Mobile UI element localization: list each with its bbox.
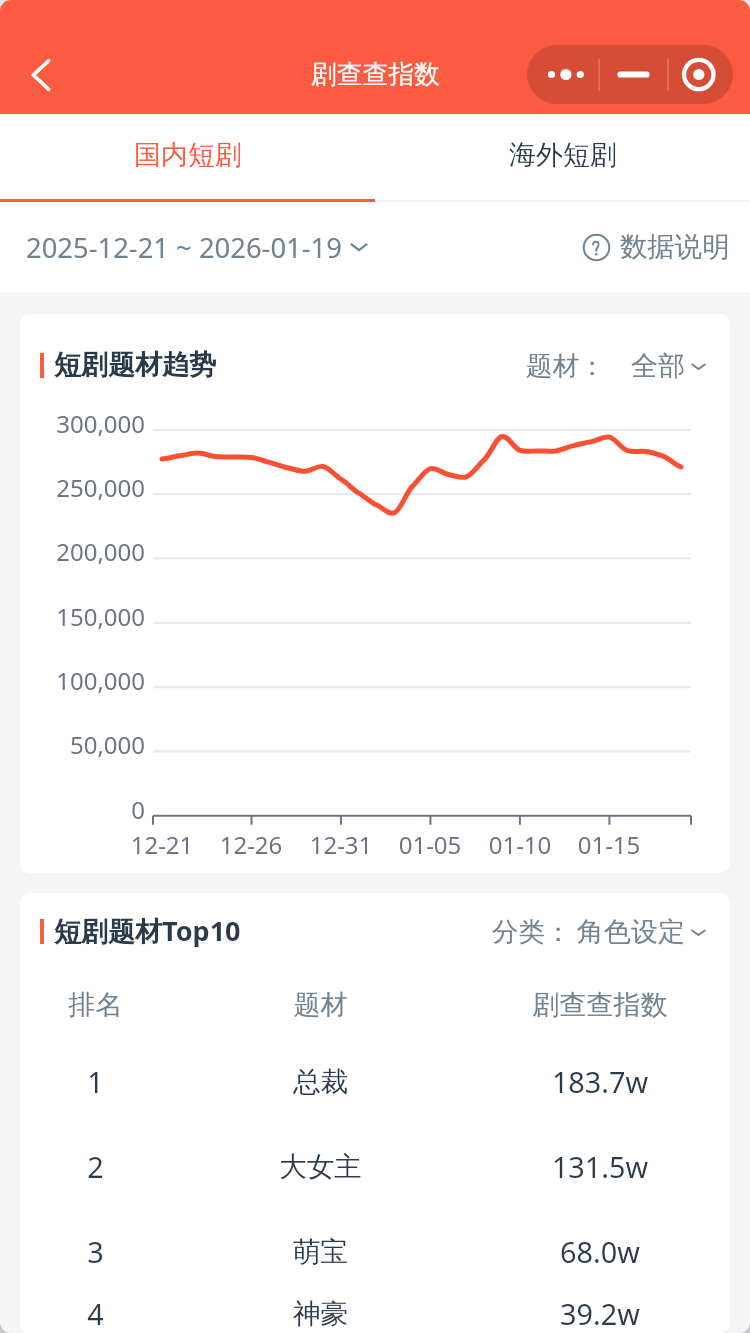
staticText: 131.5w bbox=[470, 1147, 730, 1186]
staticText: 50,000 bbox=[20, 728, 145, 761]
button[interactable]: 海外短剧 bbox=[375, 114, 750, 202]
staticText: 角色设定 bbox=[577, 915, 685, 949]
staticText: 排名 bbox=[20, 988, 171, 1022]
button[interactable]: Back bbox=[4, 36, 80, 112]
button[interactable]: 题材： bbox=[526, 349, 706, 383]
button[interactable]: 分类： bbox=[492, 915, 706, 949]
staticText: 100,000 bbox=[20, 664, 145, 697]
staticText: 3 bbox=[20, 1232, 171, 1271]
button[interactable]: 国内短剧 bbox=[0, 114, 375, 202]
staticText: 2025-12-21 ~ 2026-01-19 bbox=[26, 229, 342, 266]
staticText: 2 bbox=[20, 1147, 171, 1186]
staticText: 12-26 bbox=[201, 828, 301, 861]
staticText: 0 bbox=[20, 793, 145, 826]
staticText: 全部 bbox=[631, 349, 685, 383]
button[interactable]: 2025-12-21 ~ 2026-01-19 bbox=[0, 202, 384, 292]
staticText: 海外短剧 bbox=[509, 138, 617, 172]
button[interactable]: Menu bbox=[527, 45, 733, 104]
staticText: 剧查查指数 bbox=[311, 58, 440, 91]
staticText: 250,000 bbox=[20, 471, 145, 504]
staticText: 01-05 bbox=[380, 828, 480, 861]
staticText: 总裁 bbox=[171, 1064, 470, 1099]
staticText: 大女主 bbox=[171, 1149, 470, 1184]
staticText: 01-10 bbox=[470, 828, 570, 861]
staticText: 39.2w bbox=[470, 1294, 730, 1333]
staticText: 12-21 bbox=[112, 828, 212, 861]
staticText: 01-15 bbox=[559, 828, 659, 861]
staticText: 分类： bbox=[492, 916, 572, 949]
staticText: 300,000 bbox=[20, 407, 145, 440]
staticText: 200,000 bbox=[20, 535, 145, 568]
staticText: 神豪 bbox=[171, 1296, 470, 1331]
button[interactable]: 2 bbox=[20, 1124, 730, 1209]
staticText: 12-31 bbox=[291, 828, 391, 861]
staticText: 1 bbox=[20, 1062, 171, 1101]
staticText: 68.0w bbox=[470, 1232, 730, 1271]
staticText: 萌宝 bbox=[171, 1234, 470, 1269]
staticText: 150,000 bbox=[20, 600, 145, 633]
button[interactable]: 3 bbox=[20, 1209, 730, 1294]
staticText: 4 bbox=[20, 1294, 171, 1333]
button[interactable]: 1 bbox=[20, 1039, 730, 1124]
staticText: 短剧题材Top10 bbox=[54, 912, 241, 949]
staticText: 短剧题材趋势 bbox=[54, 348, 216, 382]
staticText: 国内短剧 bbox=[134, 138, 242, 172]
staticText: 剧查查指数 bbox=[470, 988, 730, 1022]
staticText: 183.7w bbox=[470, 1062, 730, 1101]
staticText: 数据说明 bbox=[620, 230, 730, 265]
staticText: 题材： bbox=[526, 350, 606, 383]
staticText: 题材 bbox=[171, 988, 470, 1022]
button[interactable]: 4 bbox=[20, 1294, 730, 1333]
button[interactable]: 数据说明 bbox=[567, 202, 750, 292]
